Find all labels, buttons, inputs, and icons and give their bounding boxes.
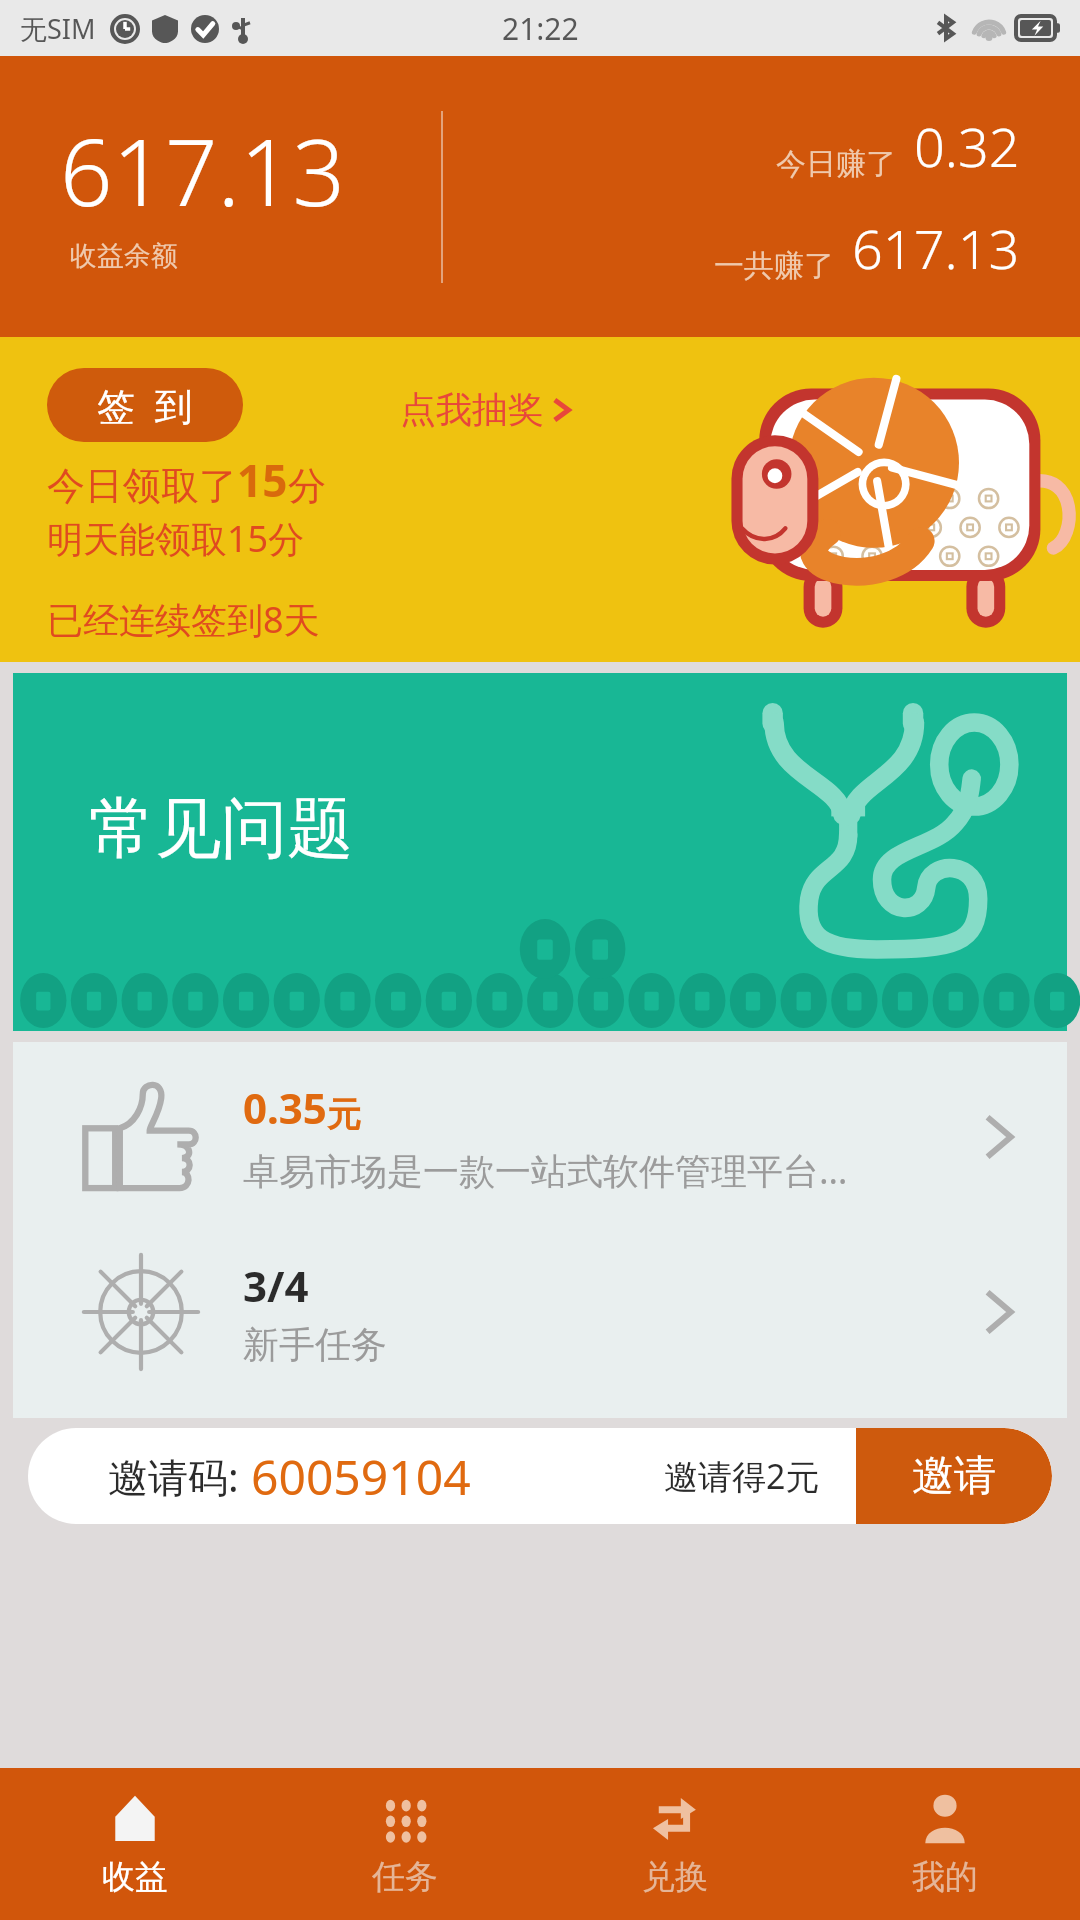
staticText: 卓易市场是一款一站式软件管理平台… <box>243 1146 848 1195</box>
button[interactable]: 邀请码: <box>28 1428 856 1524</box>
staticText: 邀请码: <box>108 1449 239 1504</box>
button[interactable]: 邀请 <box>856 1428 1052 1524</box>
staticText: 兑换 <box>642 1856 708 1898</box>
staticText: 617.13 <box>60 108 346 233</box>
button[interactable]: 兑换 <box>540 1768 810 1920</box>
staticText: 今日赚了 <box>776 145 896 183</box>
staticText: 21:22 <box>502 8 579 49</box>
staticText: 今日领取了 <box>47 462 237 510</box>
button[interactable]: 收益 <box>0 1768 270 1920</box>
staticText: 任务 <box>372 1856 438 1898</box>
button[interactable]: 常见问题 <box>13 673 1067 1031</box>
staticText: 3/4 <box>243 1257 309 1314</box>
staticText: 元 <box>327 1093 361 1136</box>
button[interactable]: 0.35 <box>13 1042 1067 1232</box>
staticText: 明天能领取15分 <box>47 514 305 563</box>
button[interactable]: 任务 <box>270 1768 540 1920</box>
staticText: 邀请 <box>912 1450 996 1503</box>
staticText: 常见问题 <box>89 787 353 870</box>
staticText: 签 到 <box>97 379 193 431</box>
button[interactable]: 签 到 <box>47 368 243 442</box>
staticText: 已经连续签到8天 <box>47 595 320 644</box>
staticText: 点我抽奖 <box>400 387 544 432</box>
staticText: 0.32 <box>914 109 1020 183</box>
button[interactable]: 3/4 <box>13 1232 1067 1392</box>
staticText: 收益余额 <box>70 239 178 273</box>
staticText: 一共赚了 <box>714 247 834 285</box>
staticText: 收益 <box>102 1856 168 1898</box>
button[interactable]: 我的 <box>810 1768 1080 1920</box>
staticText: 0.35 <box>243 1079 327 1136</box>
staticText: 617.13 <box>852 211 1020 285</box>
staticText: 15 <box>237 450 288 510</box>
staticText: 邀请得2元 <box>664 1453 820 1499</box>
staticText: 我的 <box>912 1856 978 1898</box>
staticText: 无SIM <box>20 10 96 47</box>
staticText: 分 <box>288 462 326 510</box>
staticText: 新手任务 <box>243 1322 387 1367</box>
staticText: 60059104 <box>251 1444 471 1509</box>
button[interactable]: 点我抽奖 <box>400 387 580 432</box>
